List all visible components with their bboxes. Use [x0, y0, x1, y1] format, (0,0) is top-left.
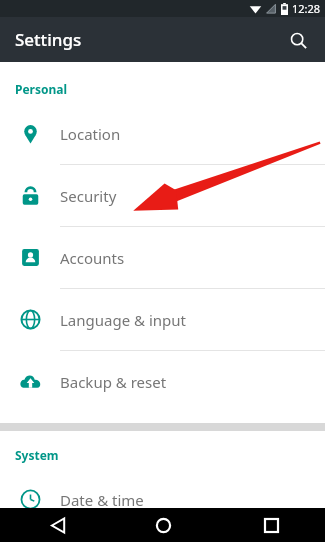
- button[interactable]: Security: [0, 165, 325, 226]
- button[interactable]: Accounts: [0, 227, 325, 288]
- staticText: 12:28: [292, 1, 321, 16]
- button[interactable]: Language & input: [0, 289, 325, 350]
- staticText: Date & time: [60, 490, 144, 510]
- staticText: Personal: [15, 81, 68, 97]
- staticText: Language & input: [60, 310, 186, 330]
- button[interactable]: Search: [279, 21, 317, 59]
- button[interactable]: Date & time: [0, 469, 325, 530]
- staticText: Accounts: [60, 248, 125, 268]
- button[interactable]: Backup & reset: [0, 351, 325, 412]
- button[interactable]: Location: [0, 103, 325, 164]
- button[interactable]: Recents: [217, 508, 325, 542]
- button[interactable]: Home: [109, 508, 217, 542]
- staticText: System: [15, 447, 59, 463]
- staticText: Backup & reset: [60, 372, 167, 392]
- staticText: Settings: [15, 28, 82, 51]
- button[interactable]: Back: [0, 508, 109, 542]
- staticText: Security: [60, 186, 117, 206]
- staticText: Location: [60, 124, 121, 144]
